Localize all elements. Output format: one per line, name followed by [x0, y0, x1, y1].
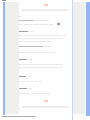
- button[interactable]: [0, 0, 90, 120]
